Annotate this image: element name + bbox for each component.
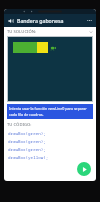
button[interactable]: Sonido — [6, 16, 15, 25]
button[interactable]: drawBox(green); — [4, 146, 96, 154]
button[interactable]: Más opciones — [85, 16, 94, 25]
staticText: Intenta usar la función newLine() para s… — [9, 106, 87, 111]
staticText: TU SOLUCIÓN: — [7, 29, 87, 35]
button[interactable]: Intenta usar la función newLine() para s… — [7, 104, 93, 119]
button[interactable]: Expandir — [87, 28, 94, 35]
staticText: cada fila de cuadros. — [9, 112, 44, 117]
button[interactable]: drawBox(yellow); — [4, 154, 96, 162]
button[interactable]: Ejecutar — [77, 162, 91, 176]
button[interactable]: drawBox(green); — [4, 138, 96, 146]
staticText: Bandera gabonesa — [17, 17, 85, 24]
staticText: TU CÓDIGO: — [7, 122, 32, 128]
button[interactable]: drawBox(green); — [4, 130, 96, 138]
